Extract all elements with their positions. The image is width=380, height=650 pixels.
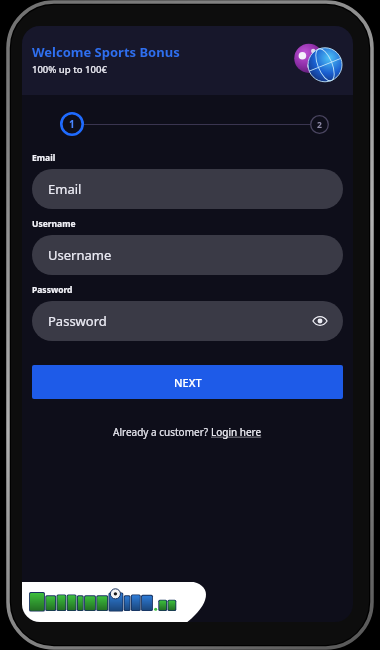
button[interactable]: Already a customer? [32,425,343,439]
staticText: Already a customer? [113,425,211,439]
staticText: Email [48,180,82,198]
button[interactable]: NEXT [32,365,343,399]
staticText: Password [48,312,107,330]
button[interactable]: 2 [310,115,329,134]
staticText: 1 [69,117,75,131]
button[interactable]: 1 [60,112,84,136]
staticText: Email [32,152,56,164]
button[interactable]: Show password [310,311,330,331]
staticText: 100% up to 100€ [32,63,107,76]
button[interactable]: Username [32,235,343,275]
staticText: Username [32,218,76,230]
staticText: Login here [211,425,262,439]
button[interactable]: Password [32,301,343,341]
staticText: 2 [317,119,322,131]
staticText: Welcome Sports Bonus [32,43,180,61]
button[interactable]: Email [32,169,343,209]
staticText: Username [48,246,112,264]
staticText: Password [32,284,73,296]
staticText: NEXT [174,375,202,390]
